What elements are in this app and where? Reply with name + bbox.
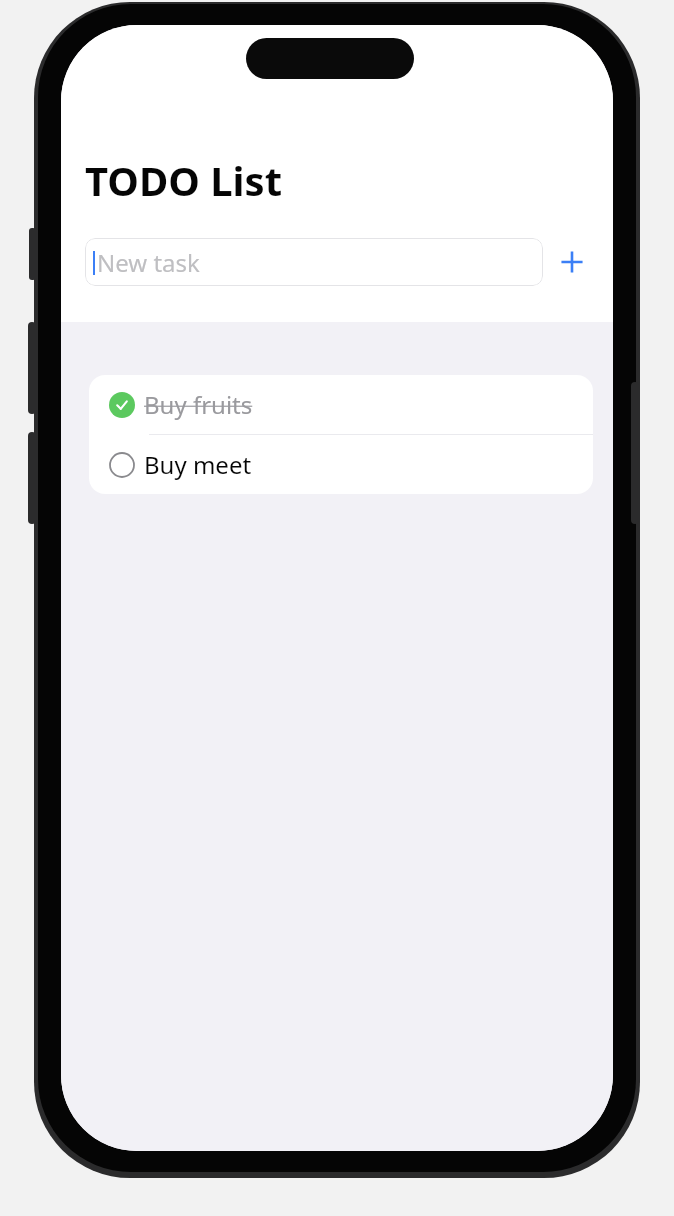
staticText: TODO List bbox=[85, 153, 282, 207]
staticText: New task bbox=[97, 246, 200, 279]
button[interactable]: New task bbox=[85, 238, 543, 286]
staticText: Buy meet bbox=[144, 448, 252, 481]
button[interactable]: Add task bbox=[551, 241, 593, 283]
button[interactable]: Buy fruits bbox=[89, 375, 593, 434]
button[interactable]: Buy meet bbox=[89, 435, 593, 494]
staticText: Buy fruits bbox=[144, 388, 253, 421]
